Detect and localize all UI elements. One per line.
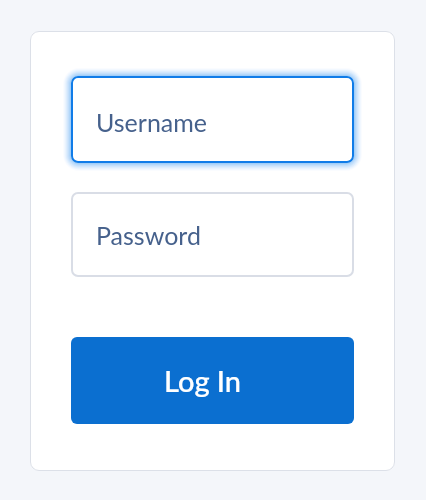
button[interactable]: Log In	[71, 337, 354, 424]
button[interactable]: Username	[71, 76, 354, 163]
staticText: Log In	[164, 363, 242, 398]
button[interactable]: Password	[71, 192, 354, 277]
staticText: Username	[96, 107, 208, 137]
staticText: Password	[96, 220, 201, 250]
